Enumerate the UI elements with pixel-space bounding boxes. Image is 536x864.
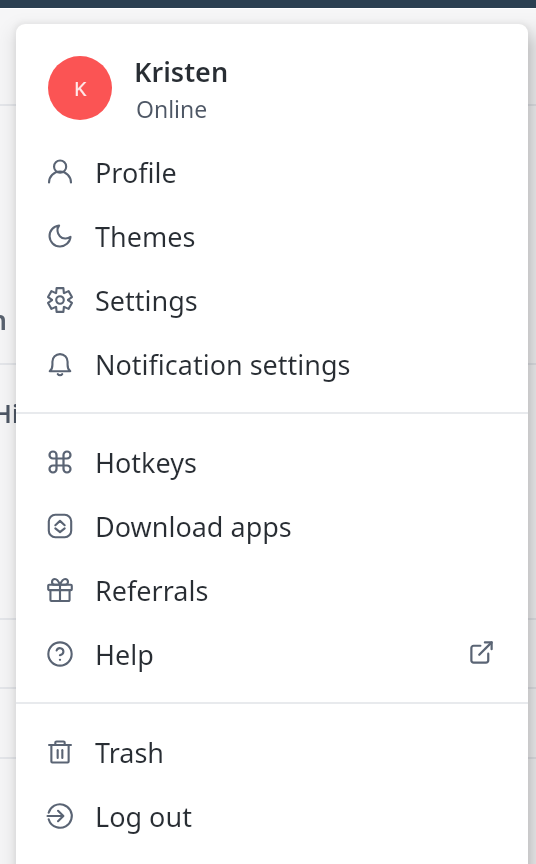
button[interactable]: Themes bbox=[16, 204, 528, 268]
staticText: Hotkeys bbox=[95, 444, 197, 481]
button[interactable]: Help bbox=[16, 622, 528, 686]
button[interactable]: Hotkeys bbox=[16, 430, 528, 494]
staticText: Settings bbox=[95, 282, 198, 319]
button[interactable]: Open Help in new window bbox=[459, 630, 503, 674]
staticText: Trash bbox=[95, 734, 165, 771]
staticText: Download apps bbox=[95, 508, 292, 545]
button[interactable]: Profile bbox=[16, 140, 528, 204]
staticText: Online bbox=[136, 93, 208, 124]
staticText: Themes bbox=[95, 218, 196, 255]
staticText: en bbox=[0, 301, 8, 338]
staticText: Profile bbox=[95, 154, 177, 191]
staticText: Log out bbox=[95, 798, 192, 835]
staticText: Hi bbox=[0, 396, 19, 430]
button[interactable]: Download apps bbox=[16, 494, 528, 558]
staticText: Kristen bbox=[134, 53, 229, 90]
button[interactable]: Trash bbox=[16, 720, 528, 784]
button[interactable]: Notification settings bbox=[16, 332, 528, 396]
button[interactable]: Log out bbox=[16, 784, 528, 848]
button[interactable]: Settings bbox=[16, 268, 528, 332]
staticText: Referrals bbox=[95, 572, 209, 609]
staticText: Notification settings bbox=[95, 346, 351, 383]
button[interactable]: K bbox=[16, 24, 528, 138]
staticText: Help bbox=[95, 636, 154, 673]
button[interactable]: Referrals bbox=[16, 558, 528, 622]
staticText: K bbox=[74, 75, 87, 102]
